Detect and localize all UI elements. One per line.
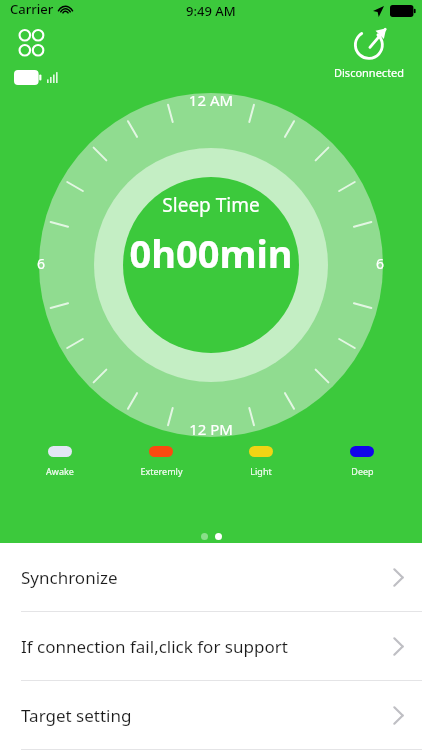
button[interactable]: Page 2 <box>215 533 222 540</box>
staticText: 6 <box>1 254 81 273</box>
staticText: 9:49 AM <box>186 2 236 20</box>
staticText: 12 PM <box>171 419 251 439</box>
staticText: Target setting <box>21 704 393 727</box>
button[interactable]: If connection fail,click for support <box>0 612 422 680</box>
button[interactable]: Synchronize <box>0 543 422 611</box>
button[interactable]: Menu <box>14 26 54 66</box>
button[interactable]: Light <box>225 446 297 477</box>
staticText: Deep <box>351 465 374 477</box>
button[interactable]: Page 1 <box>201 533 208 540</box>
button[interactable]: Awake <box>24 446 96 477</box>
button[interactable]: Deep <box>326 446 398 477</box>
staticText: Exteremly <box>140 465 183 477</box>
staticText: Light <box>250 465 272 477</box>
staticText: Carrier <box>10 0 54 18</box>
button[interactable]: Share <box>330 24 409 80</box>
staticText: 12 AM <box>171 90 251 110</box>
staticText: Disconnected <box>334 65 405 80</box>
staticText: Awake <box>46 465 74 477</box>
staticText: 0h00min <box>129 227 293 279</box>
other: Share <box>351 24 389 62</box>
staticText: If connection fail,click for support <box>21 635 393 658</box>
button[interactable]: Exteremly <box>125 446 197 477</box>
staticText: Sleep Time <box>162 192 260 218</box>
staticText: 6 <box>340 254 420 273</box>
staticText: Synchronize <box>21 566 393 589</box>
button[interactable]: Target setting <box>0 681 422 749</box>
